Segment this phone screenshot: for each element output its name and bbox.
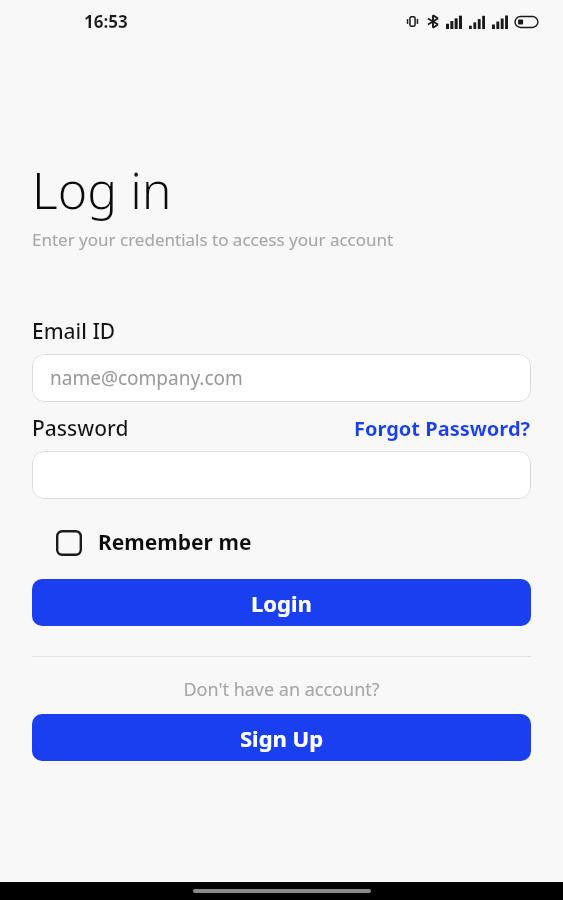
staticText: Remember me — [98, 528, 252, 557]
staticText: Enter your credentials to access your ac… — [32, 228, 394, 251]
staticText: Sign Up — [240, 723, 324, 753]
staticText: Login — [251, 588, 312, 618]
button[interactable]: Forgot Password? — [354, 415, 531, 442]
button[interactable]: Login — [32, 579, 531, 626]
button[interactable]: name@company.com — [32, 354, 531, 402]
staticText: 16:53 — [84, 10, 128, 33]
button[interactable] — [32, 451, 531, 499]
staticText: name@company.com — [50, 365, 243, 391]
button[interactable]: Remember me — [50, 524, 258, 561]
staticText: Password — [32, 414, 129, 443]
staticText: Don't have an account? — [0, 677, 563, 702]
staticText: Email ID — [32, 317, 116, 346]
staticText: Log in — [32, 156, 172, 224]
staticText: Forgot Password? — [354, 415, 531, 442]
button[interactable]: Sign Up — [32, 714, 531, 761]
